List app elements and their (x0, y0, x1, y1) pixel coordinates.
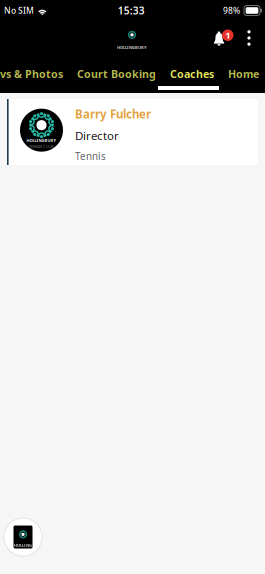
button[interactable]: Club home (0, 511, 46, 563)
staticText: HOLLINGBURY (26, 138, 56, 143)
staticText: Home (228, 66, 259, 81)
button[interactable]: HOLLINGBURY (0, 93, 265, 165)
button[interactable]: vs & Photos (0, 66, 63, 81)
button[interactable]: More options (237, 24, 261, 52)
button[interactable]: Home (228, 66, 259, 81)
staticText: TENNIS CLUB (29, 144, 54, 149)
button[interactable]: Court Booking (77, 66, 156, 81)
staticText: Barry Fulcher (75, 106, 151, 122)
button[interactable]: Coaches (170, 66, 214, 81)
staticText: 1 (225, 29, 230, 42)
staticText: HOLLINGBURY (117, 45, 147, 50)
staticText: 98% (223, 5, 240, 16)
staticText: Court Booking (77, 66, 156, 81)
staticText: 15:33 (118, 4, 145, 17)
staticText: Director (75, 128, 119, 143)
staticText: HOLLING (14, 543, 32, 548)
button[interactable]: Notifications (209, 24, 237, 52)
staticText: Coaches (170, 66, 214, 81)
staticText: vs & Photos (0, 66, 63, 81)
staticText: Tennis (75, 149, 106, 163)
staticText: No SIM (4, 5, 34, 16)
